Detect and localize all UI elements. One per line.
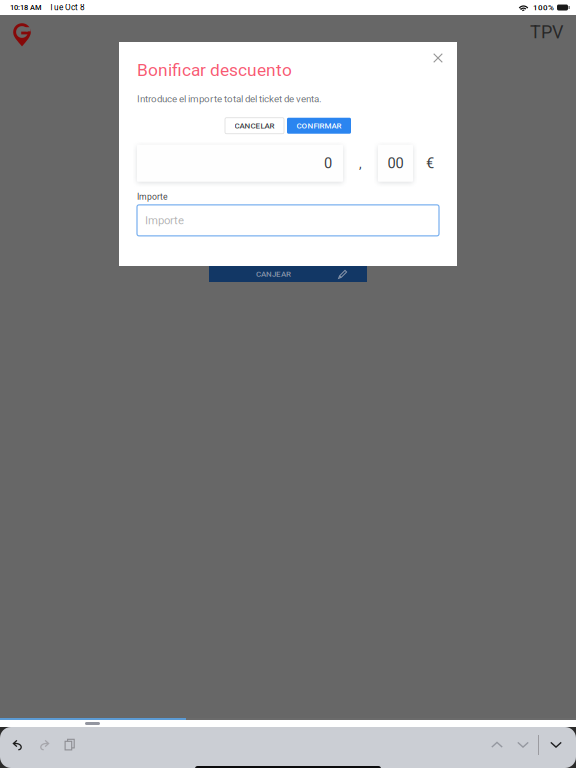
staticText: Importe [137, 192, 168, 202]
staticText: Tue Oct 8 [49, 3, 85, 12]
staticText: € [426, 155, 434, 172]
staticText: , [359, 155, 362, 171]
button[interactable]: CANJEAR [209, 266, 367, 282]
button[interactable]: Rehacer [31, 732, 57, 758]
staticText: 100% [533, 3, 554, 12]
button[interactable]: Deshacer [5, 732, 31, 758]
button[interactable]: Campo siguiente [510, 732, 536, 758]
staticText: Importe [145, 214, 184, 227]
button[interactable]: CONFIRMAR [287, 118, 351, 134]
button[interactable]: Cerrar [427, 47, 449, 69]
button[interactable]: Ocultar teclado [543, 732, 569, 758]
staticText: CANJEAR [256, 269, 291, 279]
staticText: 10:18 AM [10, 3, 42, 12]
staticText: TPV [530, 21, 563, 43]
staticText: 00 [387, 155, 403, 172]
staticText: CONFIRMAR [296, 121, 341, 130]
staticText: Bonificar descuento [137, 60, 292, 80]
staticText: CANCELAR [234, 121, 274, 130]
button[interactable]: CANCELAR [225, 118, 284, 134]
button[interactable]: Campo anterior [484, 732, 510, 758]
button[interactable]: TPV [524, 17, 569, 47]
staticText: Introduce el importe total del ticket de… [137, 93, 322, 105]
staticText: 0 [324, 155, 332, 172]
button[interactable]: Pegar [57, 732, 83, 758]
